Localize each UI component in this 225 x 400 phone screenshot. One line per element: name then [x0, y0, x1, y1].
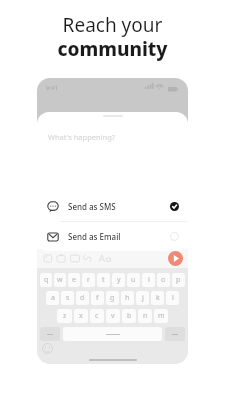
button[interactable]: d [76, 291, 89, 305]
button[interactable]: Key [165, 327, 185, 341]
button[interactable]: v [106, 309, 120, 323]
staticText: a [51, 293, 55, 303]
staticText: j [142, 293, 144, 303]
button[interactable]: i [142, 273, 155, 287]
button[interactable]: y [112, 273, 125, 287]
staticText: 9:41 [46, 84, 58, 92]
button[interactable]: u [127, 273, 140, 287]
staticText: x [79, 311, 83, 321]
button[interactable]: m [154, 309, 168, 323]
staticText: b [127, 311, 132, 321]
button[interactable]: c [90, 309, 104, 323]
staticText: g [110, 293, 115, 303]
staticText: c [95, 311, 99, 321]
button[interactable]: Key [40, 327, 60, 341]
button[interactable]: Send as SMS [38, 192, 187, 221]
button[interactable]: q [40, 273, 52, 287]
button[interactable]: Send [168, 251, 183, 266]
button[interactable]: k [151, 291, 164, 305]
staticText: m [158, 311, 165, 321]
button[interactable]: j [136, 291, 149, 305]
button[interactable]: p [172, 273, 185, 287]
staticText: n [143, 311, 148, 321]
staticText: Send as SMS [68, 201, 116, 212]
button[interactable]: f [91, 291, 104, 305]
staticText: k [156, 293, 160, 303]
staticText: i [148, 275, 150, 285]
staticText: q [44, 275, 49, 285]
staticText: s [66, 293, 70, 303]
staticText: r [87, 275, 90, 285]
staticText: d [80, 293, 85, 303]
button[interactable]: a [46, 291, 59, 305]
button[interactable]: Send as Email [38, 222, 187, 251]
button[interactable]: t [97, 273, 110, 287]
staticText: l [172, 293, 174, 303]
button[interactable]: b [122, 309, 136, 323]
button[interactable]: r [82, 273, 95, 287]
button[interactable]: z [57, 309, 72, 323]
button[interactable]: n [138, 309, 152, 323]
button[interactable]: e [68, 273, 80, 287]
staticText: t [102, 275, 105, 285]
button[interactable]: o [157, 273, 170, 287]
staticText: o [161, 275, 166, 285]
staticText: v [111, 311, 115, 321]
button[interactable]: w [54, 273, 66, 287]
staticText: Send as Email [68, 231, 121, 242]
button[interactable]: g [106, 291, 119, 305]
staticText: y [117, 275, 121, 285]
staticText: p [176, 275, 181, 285]
button[interactable]: x [74, 309, 88, 323]
staticText: e [72, 275, 76, 285]
staticText: Reach your community [0, 12, 225, 61]
staticText: f [96, 293, 99, 303]
staticText: h [125, 293, 130, 303]
staticText: u [131, 275, 136, 285]
staticText: What's happening? [48, 132, 116, 142]
staticText: z [63, 311, 67, 321]
staticText: w [57, 275, 63, 285]
button[interactable]: s [61, 291, 74, 305]
button[interactable]: l [166, 291, 179, 305]
button[interactable]: h [121, 291, 134, 305]
button[interactable]: Space [63, 327, 162, 341]
